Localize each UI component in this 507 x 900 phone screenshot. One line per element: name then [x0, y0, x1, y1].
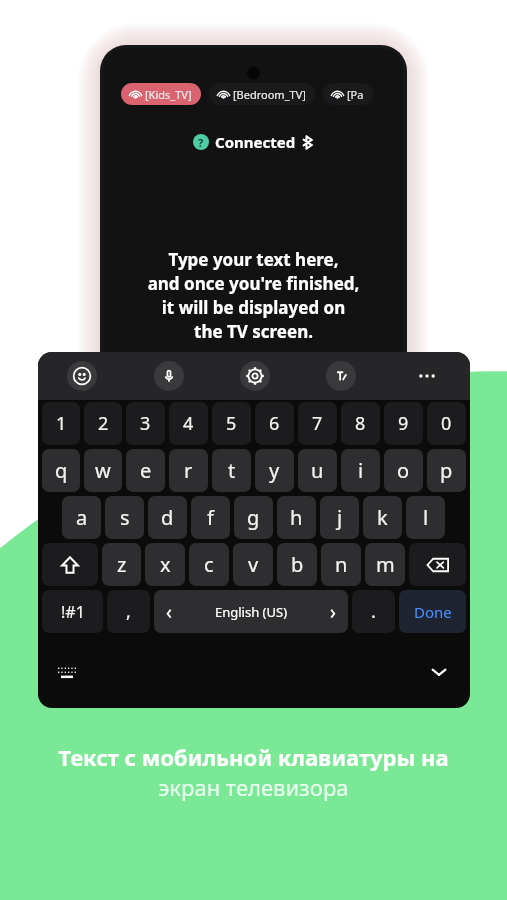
staticText: h — [290, 504, 303, 531]
button[interactable]: e — [126, 449, 165, 492]
staticText: экран телевизора — [158, 772, 349, 802]
staticText: 2 — [98, 411, 109, 436]
staticText: 0 — [441, 411, 452, 436]
staticText: Done — [414, 602, 452, 622]
staticText: r — [184, 457, 193, 484]
staticText: [Bedroom_TV] — [233, 87, 306, 102]
staticText: 9 — [398, 411, 409, 436]
staticText: a — [76, 504, 88, 531]
staticText: x — [160, 551, 171, 578]
button[interactable]: Handwriting — [298, 352, 384, 400]
staticText: e — [140, 457, 152, 484]
button[interactable]: [Bedroom_TV] — [218, 83, 306, 105]
button[interactable]: j — [320, 496, 359, 539]
button[interactable]: x — [145, 543, 185, 586]
button[interactable]: f — [191, 496, 230, 539]
button[interactable]: 9 — [384, 402, 423, 445]
staticText: 7 — [312, 411, 323, 436]
button[interactable]: Done — [399, 590, 466, 633]
button[interactable]: 3 — [126, 402, 165, 445]
staticText: English (US) — [215, 603, 288, 621]
button[interactable]: 7 — [298, 402, 337, 445]
staticText: 6 — [269, 411, 280, 436]
button[interactable]: p — [427, 449, 466, 492]
staticText: v — [248, 551, 259, 578]
button[interactable]: b — [277, 543, 317, 586]
staticText: q — [55, 457, 68, 484]
staticText: d — [161, 504, 174, 531]
button[interactable]: s — [105, 496, 144, 539]
button[interactable]: g — [234, 496, 273, 539]
staticText: , — [126, 599, 131, 624]
staticText: m — [376, 551, 395, 578]
staticText: z — [117, 551, 127, 578]
button[interactable]: v — [233, 543, 273, 586]
button[interactable]: 8 — [341, 402, 380, 445]
staticText: Type your text here, and once you're fin… — [113, 248, 394, 343]
button[interactable]: 2 — [84, 402, 122, 445]
button[interactable]: a — [62, 496, 101, 539]
staticText: i — [358, 457, 364, 484]
staticText: Текст с мобильной клавиатуры на — [58, 742, 449, 772]
button[interactable]: Keyboard layout — [54, 659, 80, 685]
staticText: j — [337, 504, 343, 531]
staticText: c — [204, 551, 214, 578]
button[interactable]: . — [352, 590, 395, 633]
button[interactable]: c — [189, 543, 229, 586]
button[interactable]: t — [212, 449, 251, 492]
other: Shift — [59, 554, 81, 576]
button[interactable]: , — [107, 590, 150, 633]
button[interactable]: 0 — [427, 402, 466, 445]
staticText: 3 — [140, 411, 151, 436]
button[interactable]: u — [298, 449, 337, 492]
button[interactable]: y — [255, 449, 294, 492]
staticText: ? — [198, 135, 204, 150]
button[interactable]: r — [169, 449, 208, 492]
button[interactable]: Emoji — [38, 352, 125, 400]
button[interactable]: !#1 — [42, 590, 103, 633]
button[interactable]: More options — [384, 352, 470, 400]
staticText: › — [330, 599, 336, 625]
button[interactable]: o — [384, 449, 423, 492]
button[interactable]: [Pa — [332, 83, 364, 105]
staticText: 1 — [56, 411, 67, 436]
button[interactable]: [Kids_TV] — [130, 83, 192, 105]
button[interactable]: m — [365, 543, 405, 586]
staticText: s — [120, 504, 130, 531]
staticText: k — [377, 504, 388, 531]
button[interactable]: 4 — [169, 402, 208, 445]
staticText: o — [397, 457, 410, 484]
staticText: b — [291, 551, 304, 578]
button[interactable]: ‹ — [154, 590, 348, 633]
button[interactable]: q — [42, 449, 80, 492]
button[interactable]: d — [148, 496, 187, 539]
button[interactable]: k — [363, 496, 402, 539]
staticText: Connected — [215, 132, 296, 152]
button[interactable]: l — [406, 496, 445, 539]
button[interactable]: i — [341, 449, 380, 492]
button[interactable]: Backspace — [409, 543, 466, 586]
staticText: y — [269, 457, 280, 484]
staticText: u — [311, 457, 324, 484]
button[interactable]: Shift — [42, 543, 98, 586]
button[interactable]: n — [321, 543, 361, 586]
button[interactable]: w — [84, 449, 122, 492]
button[interactable]: 5 — [212, 402, 251, 445]
button[interactable]: Voice input — [125, 352, 212, 400]
button[interactable]: z — [102, 543, 141, 586]
staticText: t — [228, 457, 236, 484]
staticText: p — [440, 457, 453, 484]
staticText: n — [335, 551, 348, 578]
button[interactable]: h — [277, 496, 316, 539]
button[interactable]: Settings — [212, 352, 298, 400]
button[interactable]: 1 — [42, 402, 80, 445]
staticText: g — [247, 504, 260, 531]
staticText: 5 — [226, 411, 237, 436]
staticText: 4 — [183, 411, 194, 436]
button[interactable]: Hide keyboard — [424, 657, 454, 687]
staticText: l — [423, 504, 429, 531]
staticText: !#1 — [61, 601, 85, 623]
staticText: 8 — [355, 411, 366, 436]
staticText: [Kids_TV] — [145, 87, 192, 102]
button[interactable]: 6 — [255, 402, 294, 445]
